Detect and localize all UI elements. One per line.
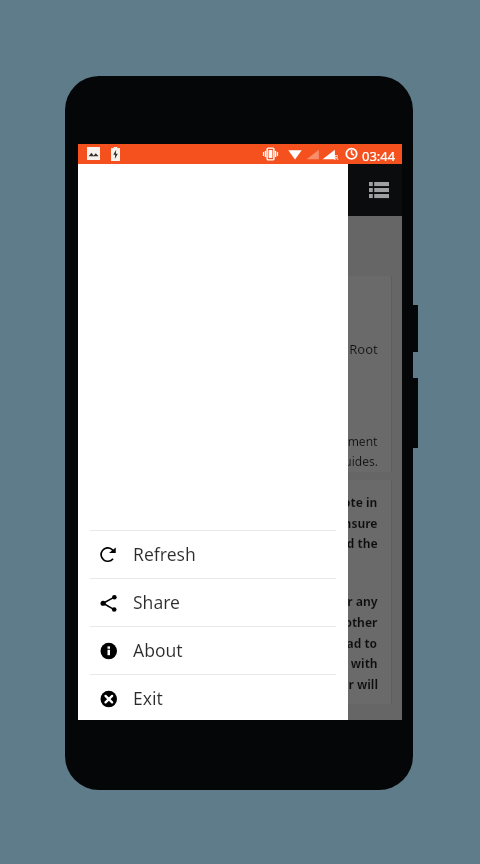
button[interactable]: Refresh: [78, 530, 348, 578]
button[interactable]: List view: [360, 171, 398, 209]
staticText: to work properly. It provides detailed g…: [126, 453, 378, 469]
staticText: you fully understand the: [230, 535, 378, 551]
staticText: Refresh: [133, 542, 196, 566]
staticText: This application requires a rooted envir…: [113, 433, 378, 449]
staticText: caution, the developer will: [219, 676, 378, 692]
button[interactable]: Exit: [78, 674, 348, 722]
button[interactable]: About: [78, 626, 348, 674]
staticText: damage to your device or other: [189, 614, 378, 630]
staticText: 03:44: [362, 147, 396, 165]
staticText: We are not responsible for any: [195, 593, 378, 609]
staticText: malfunction. Proceed with: [220, 655, 378, 671]
button[interactable]: Share: [78, 578, 348, 626]
staticText: Please read every note in: [227, 494, 378, 510]
staticText: the app carefully. Ensure: [230, 515, 378, 531]
staticText: problems that may lead to: [219, 635, 378, 651]
staticText: R: [334, 153, 339, 163]
staticText: Exit: [133, 686, 163, 710]
staticText: Superuser Root: [283, 340, 378, 358]
staticText: About: [133, 638, 183, 662]
staticText: Share: [133, 590, 180, 614]
